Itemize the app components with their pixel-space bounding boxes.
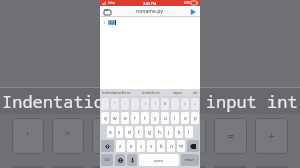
button[interactable]: IndexError [142, 90, 161, 95]
button[interactable]: l [185, 126, 193, 138]
staticText: ror input int [165, 90, 298, 113]
staticText: b [160, 143, 163, 149]
button[interactable]: s [116, 126, 123, 138]
staticText: a [109, 129, 112, 135]
button[interactable]: 123 [101, 154, 113, 166]
button[interactable]: Dictation [127, 154, 137, 166]
staticText: e [124, 115, 127, 121]
staticText: - [186, 128, 194, 144]
staticText: return [185, 158, 195, 162]
staticText: : [104, 128, 112, 144]
button[interactable]: Change language [115, 154, 125, 166]
button[interactable]: f [135, 126, 143, 138]
staticText: h [158, 129, 161, 135]
staticText: p [194, 115, 197, 121]
staticText: ' [105, 102, 106, 106]
staticText: v [150, 143, 153, 149]
staticText: in [109, 20, 114, 25]
staticText: space [154, 158, 164, 163]
button[interactable]: z [116, 140, 125, 152]
button[interactable]: k [175, 126, 183, 138]
staticText: 52% [184, 1, 190, 5]
button[interactable]: x [127, 140, 135, 152]
staticText: d [128, 129, 131, 135]
button[interactable]: h [155, 126, 163, 138]
button[interactable]: v [147, 140, 155, 152]
staticText: + [268, 128, 276, 144]
button[interactable]: d [125, 126, 133, 138]
staticText: z [119, 143, 122, 149]
button[interactable]: : [121, 98, 129, 110]
button[interactable]: Run [188, 7, 197, 16]
staticText: s [118, 129, 121, 135]
button[interactable]: ' [101, 98, 109, 110]
staticText: f [138, 129, 140, 135]
staticText: t [144, 115, 146, 121]
button[interactable]: b [157, 140, 165, 152]
button[interactable]: ( [141, 98, 149, 110]
staticText: + [194, 102, 196, 106]
staticText: ' [24, 128, 32, 144]
staticText: l [188, 129, 190, 135]
staticText: u [164, 115, 167, 121]
button[interactable]: m [177, 140, 185, 152]
button[interactable]: e [121, 112, 129, 124]
button[interactable]: ) [151, 98, 159, 110]
button[interactable]: IndentationError [102, 90, 131, 95]
button[interactable]: int [193, 90, 198, 95]
staticText: Telco [108, 1, 116, 5]
staticText: # [164, 102, 167, 106]
button[interactable]: r [131, 112, 139, 124]
button[interactable]: Shift [101, 140, 114, 152]
button[interactable]: q [101, 112, 109, 124]
button[interactable]: - [171, 98, 179, 110]
button[interactable]: a [107, 126, 114, 138]
staticText: j [168, 129, 170, 135]
staticText: : [125, 102, 126, 106]
staticText: m [179, 143, 184, 149]
staticText: input [173, 90, 182, 95]
button[interactable]: g [145, 126, 153, 138]
button[interactable]: space [139, 154, 179, 166]
staticText: ; [135, 102, 136, 106]
staticText: c [140, 143, 143, 149]
staticText: 2:32 PM [143, 1, 157, 6]
button[interactable]: + [191, 98, 199, 110]
staticText: int [193, 90, 198, 95]
staticText: o [184, 115, 187, 121]
button[interactable]: y [151, 112, 159, 124]
staticText: x [130, 143, 133, 149]
button[interactable]: Delete [187, 140, 199, 152]
button[interactable]: return [181, 154, 199, 166]
staticText: n [170, 143, 173, 149]
button[interactable]: p [191, 112, 199, 124]
button[interactable]: t [141, 112, 149, 124]
staticText: i [174, 115, 176, 121]
staticText: noname.py [136, 8, 163, 15]
button[interactable]: u [161, 112, 169, 124]
staticText: ( [145, 102, 146, 106]
button[interactable]: c [137, 140, 145, 152]
button[interactable]: o [181, 112, 189, 124]
button[interactable]: = [181, 98, 189, 110]
button[interactable]: input [173, 90, 182, 95]
button[interactable]: # [161, 98, 169, 110]
staticText: ; [145, 128, 153, 144]
staticText: 123 [104, 158, 110, 162]
button[interactable]: w [111, 112, 119, 124]
button[interactable]: Files [103, 7, 112, 16]
button[interactable]: ; [131, 98, 139, 110]
staticText: k [178, 129, 181, 135]
staticText: IndentationEr [2, 90, 135, 113]
staticText: = [184, 102, 186, 106]
staticText: " [64, 128, 72, 144]
button[interactable]: j [165, 126, 173, 138]
staticText: " [114, 102, 116, 106]
button[interactable]: " [111, 98, 119, 110]
button[interactable]: i [171, 112, 179, 124]
staticText: y [154, 115, 157, 121]
button[interactable]: n [167, 140, 175, 152]
staticText: ) [155, 102, 156, 106]
staticText: 1 [103, 20, 106, 25]
staticText: r [134, 115, 136, 121]
